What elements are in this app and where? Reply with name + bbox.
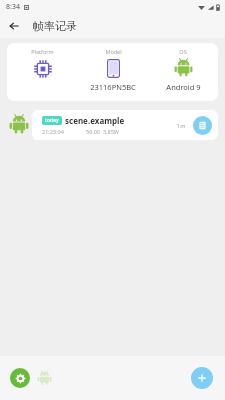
- staticText: 21:23:04: [42, 128, 64, 135]
- button[interactable]: Add: [191, 367, 213, 389]
- button[interactable]: Settings: [10, 368, 30, 388]
- staticText: 1m: [177, 122, 186, 129]
- staticText: Android 9: [166, 82, 201, 92]
- button[interactable]: Back: [5, 17, 23, 35]
- staticText: 帧率记录: [33, 19, 77, 33]
- staticText: 8:34: [6, 2, 20, 12]
- staticText: Model: [105, 48, 122, 55]
- button[interactable]: Report: [193, 116, 212, 135]
- staticText: OS: [179, 48, 187, 55]
- staticText: scene.example: [65, 115, 125, 126]
- button[interactable]: today: [32, 110, 218, 140]
- staticText: 23116PN5BC: [90, 82, 136, 92]
- button[interactable]: Apps: [34, 368, 54, 388]
- staticText: Platform: [31, 48, 54, 55]
- staticText: 56.00 3.85W: [86, 128, 119, 135]
- staticText: today: [45, 117, 59, 124]
- button[interactable]: Platform: [7, 43, 218, 101]
